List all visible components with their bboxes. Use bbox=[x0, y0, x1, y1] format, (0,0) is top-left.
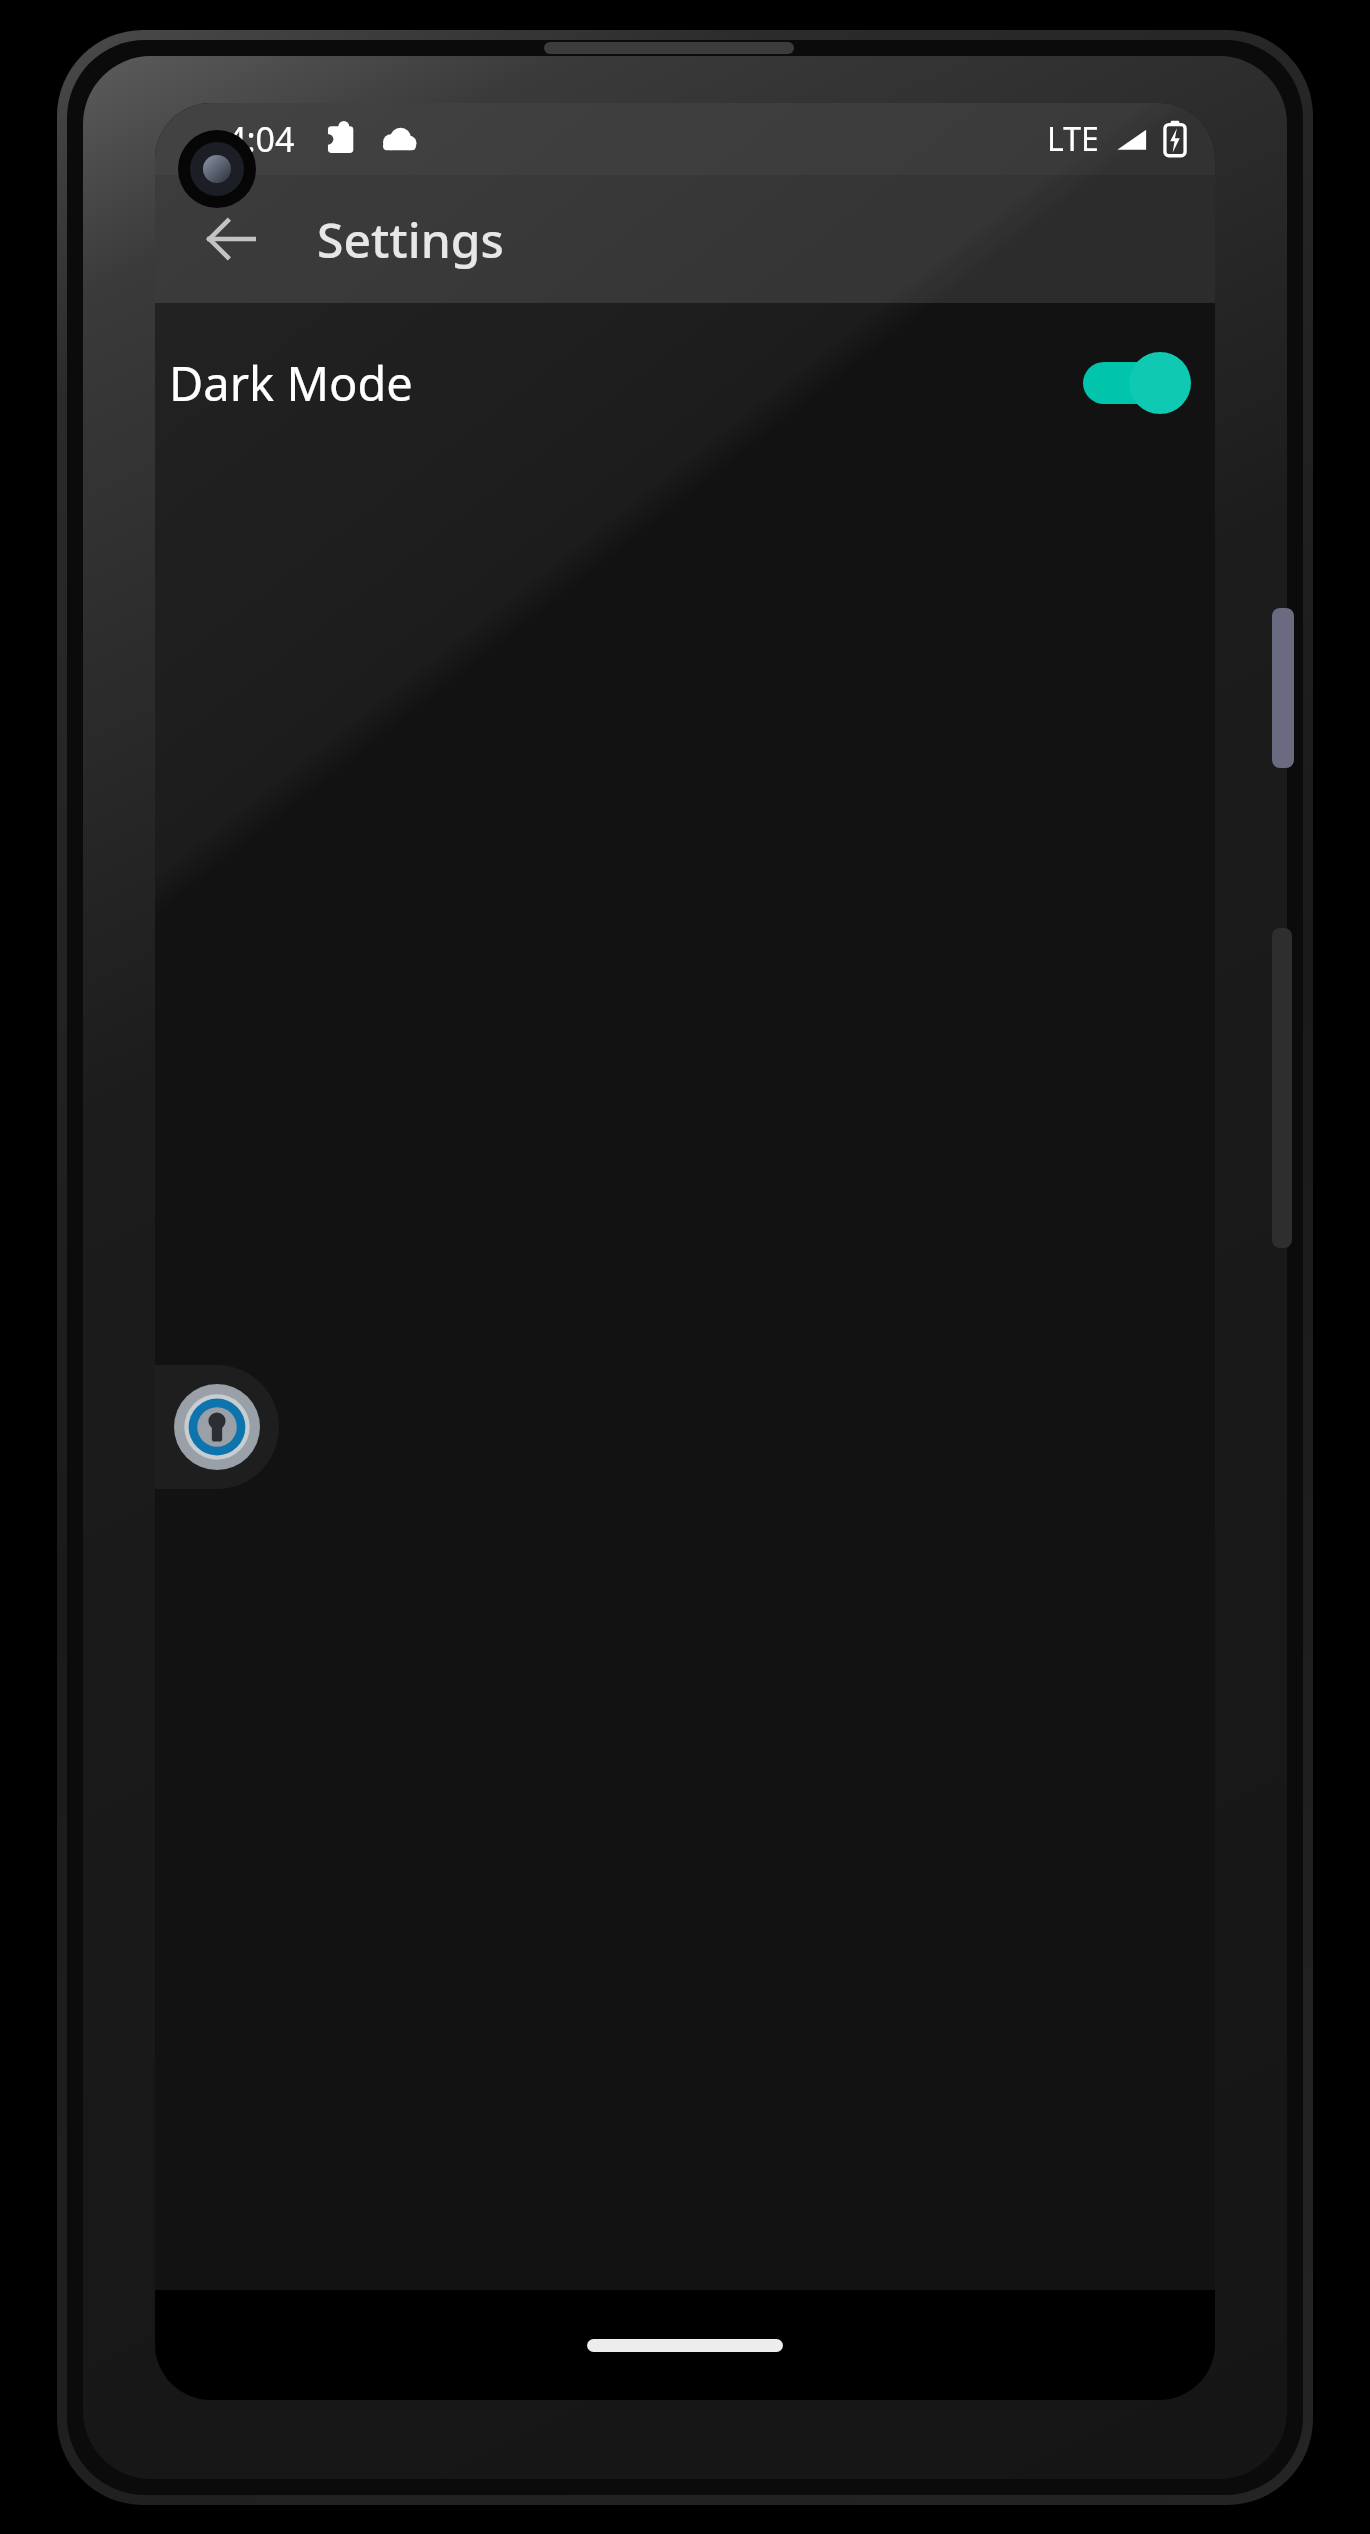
staticText: Settings bbox=[317, 207, 504, 272]
staticText: 4:04 bbox=[227, 116, 295, 162]
staticText: Dark Mode bbox=[169, 351, 413, 415]
button[interactable]: 1Password bbox=[155, 1365, 279, 1489]
button[interactable]: Dark Mode bbox=[155, 303, 1215, 463]
staticText: LTE bbox=[1047, 117, 1099, 161]
button[interactable]: Dark Mode toggle bbox=[1079, 349, 1191, 417]
button[interactable]: Back bbox=[183, 191, 279, 287]
